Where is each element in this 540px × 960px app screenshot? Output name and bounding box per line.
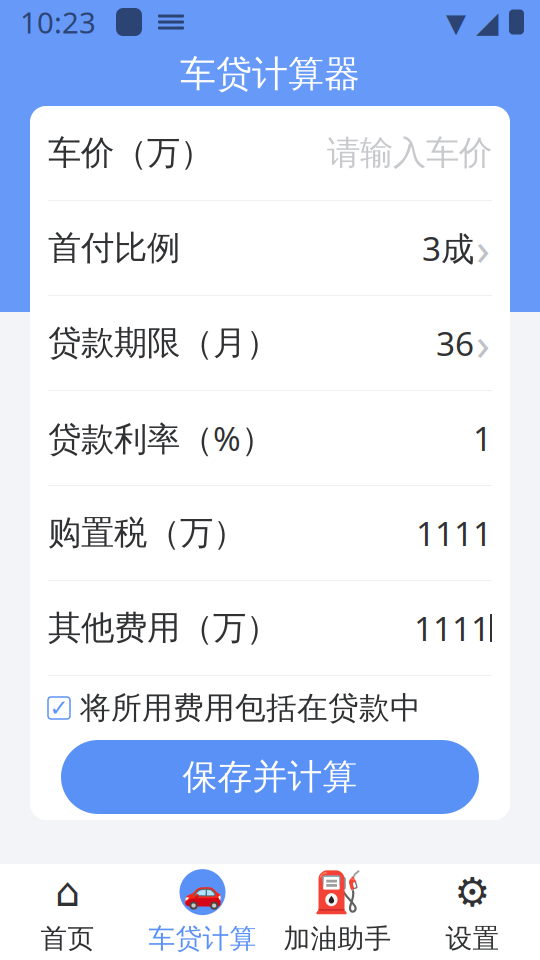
- staticText: ◢: [476, 5, 499, 39]
- staticText: 3成: [422, 226, 474, 270]
- staticText: ›: [476, 313, 490, 373]
- staticText: 首页: [40, 922, 94, 955]
- button[interactable]: 保存并计算: [61, 740, 479, 814]
- button[interactable]: 贷款利率（%）: [30, 391, 510, 485]
- button[interactable]: 贷款期限（月）: [30, 296, 510, 390]
- staticText: 车贷计算器: [180, 52, 360, 96]
- button[interactable]: 其他费用（万）: [30, 581, 510, 675]
- button[interactable]: ✓: [30, 676, 510, 740]
- staticText: 购置税（万）: [48, 512, 246, 553]
- button[interactable]: ⛽: [270, 864, 405, 960]
- button[interactable]: 车价（万）: [30, 106, 510, 200]
- staticText: 36: [436, 321, 474, 365]
- staticText: ▾: [446, 0, 466, 45]
- staticText: 车价（万）: [48, 132, 213, 173]
- staticText: 车贷计算: [148, 922, 256, 955]
- staticText: 1111: [416, 511, 492, 555]
- staticText: ✓: [49, 695, 68, 721]
- staticText: 请输入车价: [327, 132, 492, 173]
- staticText: ⌂: [55, 869, 80, 915]
- button[interactable]: 购置税（万）: [30, 486, 510, 580]
- staticText: 贷款期限（月）: [48, 322, 279, 363]
- staticText: ›: [476, 218, 490, 278]
- button[interactable]: ⌂: [0, 864, 135, 960]
- button[interactable]: ⚙: [405, 864, 540, 960]
- staticText: 加油助手: [283, 922, 391, 955]
- staticText: 10:23: [20, 2, 96, 41]
- staticText: 将所用费用包括在贷款中: [80, 689, 421, 727]
- staticText: ⚙: [454, 869, 490, 915]
- button[interactable]: 首付比例: [30, 201, 510, 295]
- button[interactable]: 🚗: [135, 864, 270, 960]
- staticText: 1: [473, 416, 492, 460]
- staticText: 保存并计算: [182, 756, 357, 798]
- staticText: 贷款利率（%）: [48, 416, 274, 460]
- staticText: 设置: [445, 922, 499, 955]
- staticText: ⛽: [312, 869, 362, 915]
- staticText: 1111: [414, 606, 490, 650]
- staticText: 🚗: [182, 874, 222, 910]
- staticText: 首付比例: [48, 227, 180, 268]
- staticText: 其他费用（万）: [48, 607, 279, 648]
